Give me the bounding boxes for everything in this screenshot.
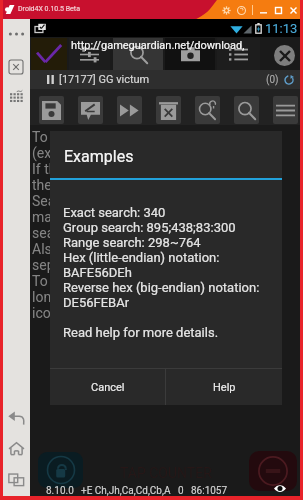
staticText: separator of the values in the group. [32,257,256,273]
staticText: To search for a value, you can use [32,129,242,145]
button[interactable]: Search [234,96,259,124]
staticText: DE56FEBAr [63,295,130,310]
button[interactable]: Visibility [274,484,286,493]
button[interactable]: Back [8,409,25,426]
staticText: the search can be performed by the [32,177,252,193]
button[interactable]: Recent apps [8,471,25,488]
staticText: TAP COUNTER [120,465,212,481]
button[interactable]: Maximise [274,6,283,15]
staticText: Group search: 895;438;83:300 [63,220,236,235]
button[interactable]: Cancel [50,369,165,405]
staticText: Examples [64,147,134,166]
button[interactable]: Filters [69,38,110,70]
staticText: Help [213,381,236,394]
button[interactable]: Close [289,6,298,15]
staticText: http://gameguardian.net/download, [71,39,245,51]
button[interactable]: Edit [78,96,103,124]
staticText: Range search: 298~764 [63,235,201,250]
button[interactable]: Fullscreen [9,60,23,74]
staticText: Cancel [91,381,125,394]
button[interactable]: Help [237,6,246,15]
staticText: To search for a sequence of values, [32,273,252,289]
button[interactable]: Home [8,440,25,457]
staticText: Also, when searching, you can set [32,241,242,257]
staticText: (0) [266,74,279,86]
staticText: search for several values at once, [32,225,239,241]
staticText: 8.10.0 [46,485,74,497]
staticText: BAFE56DEh [63,265,132,280]
button[interactable]: Search unknown [195,96,220,124]
button[interactable]: Camera [165,38,215,70]
staticText: manner in which the data is stored, [32,209,249,225]
button[interactable]: Fast forward [117,96,142,124]
button[interactable]: Close [274,45,295,66]
staticText: (exact value, range of values, group [32,145,251,161]
staticText: [17177] GG victum [59,73,150,86]
button[interactable]: Unlock [38,452,83,488]
button[interactable]: Select all [31,38,67,70]
staticText: 11:13 [265,21,298,36]
staticText: Search options allow you to select [32,193,245,209]
button[interactable]: Stop [249,451,297,491]
button[interactable]: Keyboard mapping [9,89,23,103]
button[interactable]: Search [113,38,163,70]
button[interactable]: More options [8,29,25,39]
staticText: icon. [32,305,63,321]
button[interactable]: Minimise [259,6,268,15]
staticText: Hex (little-endian) notation: [63,250,220,265]
button[interactable]: Help [166,369,282,405]
staticText: If the value being searched for is not [32,161,258,177]
button[interactable]: Clear [156,96,181,124]
staticText: Droid4X 0.10.5 Beta [18,5,80,13]
button[interactable]: Save [39,96,64,124]
button[interactable]: Edit list [217,38,260,70]
staticText: +E Ch,Jh,Ca,Cd,Cb,A 0 86:1057 [81,485,228,497]
staticText: Read help for more details. [63,325,219,340]
staticText: Reverse hex (big-endian) notation: [63,280,260,295]
staticText: long as you like, using the bookmark [32,289,258,305]
staticText: Exact search: 340 [63,205,166,220]
button[interactable]: Settings [222,6,231,15]
button[interactable]: Menu [273,96,298,124]
